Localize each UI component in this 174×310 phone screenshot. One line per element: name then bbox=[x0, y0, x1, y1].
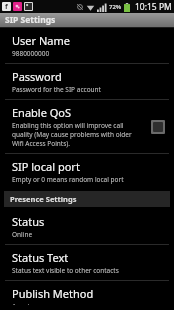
staticText: Enabling this option will improve call q… bbox=[12, 121, 144, 148]
staticText: Status bbox=[12, 214, 45, 229]
staticText: Enable QoS bbox=[12, 105, 72, 120]
button[interactable]: SIP local port bbox=[0, 154, 174, 189]
staticText: Password for the SIP account bbox=[12, 85, 101, 94]
button[interactable]: Publish Method bbox=[0, 281, 174, 310]
staticText: 72% bbox=[109, 3, 122, 11]
button[interactable]: User Name bbox=[0, 28, 174, 63]
staticText: Online bbox=[12, 230, 33, 239]
staticText: SIP local port bbox=[12, 159, 80, 174]
other: Enable QoS checkbox bbox=[150, 119, 166, 135]
staticText: SIP Settings bbox=[5, 14, 56, 26]
button[interactable]: Enable QoS bbox=[0, 100, 174, 153]
staticText: f bbox=[5, 2, 8, 11]
staticText: Agent bbox=[12, 302, 31, 305]
staticText: Status text visible to other contacts bbox=[12, 266, 119, 275]
button[interactable]: Status bbox=[0, 209, 174, 244]
staticText: 9880000000 bbox=[12, 49, 50, 58]
staticText: User Name bbox=[12, 33, 70, 48]
staticText: 10:15 PM bbox=[135, 1, 172, 13]
staticText: Password bbox=[12, 69, 62, 84]
button[interactable]: Password bbox=[0, 64, 174, 99]
staticText: Presence Settings bbox=[10, 194, 77, 204]
staticText: Empty or 0 means random local port bbox=[12, 175, 124, 184]
staticText: Status Text bbox=[12, 250, 69, 265]
button[interactable]: Status Text bbox=[0, 245, 174, 280]
staticText: Publish Method bbox=[12, 286, 94, 301]
